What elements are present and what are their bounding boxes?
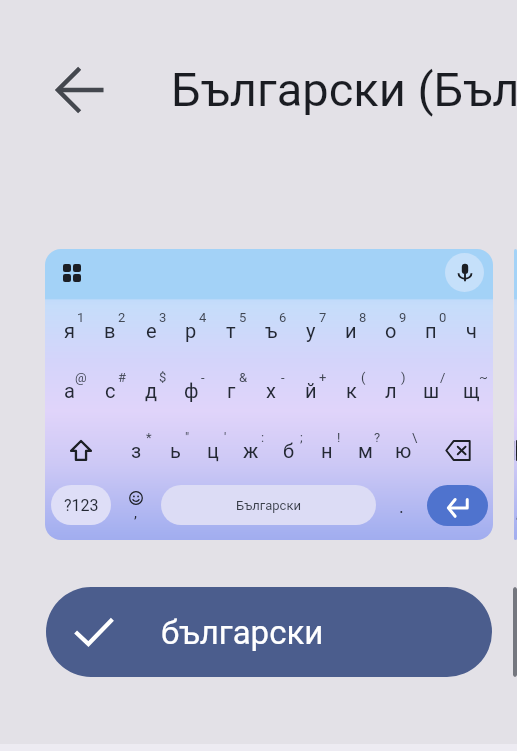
staticText: ?123 bbox=[64, 496, 99, 515]
staticText: ц bbox=[207, 439, 219, 462]
staticText: б bbox=[283, 439, 295, 462]
button[interactable]: ? bbox=[346, 420, 384, 480]
button[interactable]: Keyboard options bbox=[58, 259, 86, 287]
staticText: ~ bbox=[479, 370, 488, 385]
staticText: щ bbox=[463, 379, 480, 402]
staticText: 7 bbox=[319, 310, 327, 325]
staticText: 2 bbox=[118, 310, 126, 325]
staticText: * bbox=[146, 430, 152, 445]
button[interactable]: ( bbox=[331, 360, 371, 420]
staticText: Български (Български) bbox=[171, 62, 517, 117]
button[interactable]: 9 bbox=[371, 300, 411, 360]
button[interactable]: @ bbox=[48, 360, 89, 420]
button[interactable]: Enter bbox=[427, 485, 488, 526]
staticText: ; bbox=[300, 430, 303, 445]
staticText: я bbox=[64, 319, 75, 342]
button[interactable]: Shift bbox=[514, 420, 515, 480]
button[interactable]: * bbox=[117, 420, 156, 480]
button[interactable]: Keyboard options bbox=[514, 249, 517, 540]
button[interactable]: Keyboard options bbox=[45, 249, 493, 540]
button[interactable]: # bbox=[89, 360, 130, 420]
button[interactable]: ?123 bbox=[51, 485, 111, 525]
button[interactable]: ~ bbox=[451, 360, 491, 420]
staticText: @ bbox=[75, 370, 87, 385]
button[interactable]: Voice input bbox=[445, 253, 484, 292]
staticText: 8 bbox=[359, 310, 367, 325]
button[interactable]: * bbox=[515, 420, 516, 480]
staticText: ч bbox=[466, 319, 477, 342]
button[interactable]: 2 bbox=[89, 300, 130, 360]
staticText: \ bbox=[412, 430, 418, 445]
button[interactable]: - bbox=[251, 360, 291, 420]
staticText: български bbox=[161, 613, 324, 652]
button[interactable]: 4 bbox=[171, 300, 211, 360]
staticText: у bbox=[306, 319, 316, 342]
staticText: 9 bbox=[399, 310, 407, 325]
staticText: ж bbox=[243, 439, 259, 462]
button[interactable]: ) bbox=[371, 360, 411, 420]
staticText: и bbox=[345, 319, 357, 342]
staticText: : bbox=[261, 430, 265, 445]
staticText: " bbox=[185, 430, 190, 445]
staticText: ю bbox=[395, 439, 412, 462]
staticText: , bbox=[134, 504, 137, 522]
button[interactable]: Български bbox=[161, 485, 376, 525]
button[interactable]: Backspace bbox=[422, 420, 493, 480]
staticText: г bbox=[227, 379, 236, 402]
staticText: . bbox=[399, 496, 404, 517]
button[interactable]: 0 bbox=[411, 300, 451, 360]
staticText: - bbox=[201, 370, 205, 385]
button[interactable]: \ bbox=[384, 420, 422, 480]
button[interactable]: 8 bbox=[331, 300, 371, 360]
button[interactable]: ч bbox=[451, 300, 491, 360]
button[interactable]: . bbox=[376, 475, 427, 535]
staticText: р bbox=[185, 319, 197, 342]
button[interactable]: " bbox=[516, 420, 517, 480]
button[interactable]: ' bbox=[194, 420, 232, 480]
staticText: д bbox=[145, 379, 158, 402]
staticText: ъ bbox=[265, 319, 278, 342]
button[interactable]: 3 bbox=[130, 300, 171, 360]
staticText: $ bbox=[159, 370, 167, 385]
button[interactable]: Emoji bbox=[111, 475, 161, 535]
button[interactable]: & bbox=[211, 360, 251, 420]
staticText: 1 bbox=[77, 310, 85, 325]
staticText: / bbox=[440, 370, 446, 385]
staticText: 0 bbox=[439, 310, 447, 325]
staticText: ( bbox=[361, 370, 366, 385]
button[interactable]: 6 bbox=[251, 300, 291, 360]
staticText: а bbox=[64, 379, 75, 402]
staticText: 6 bbox=[279, 310, 287, 325]
staticText: л bbox=[385, 379, 397, 402]
staticText: ш bbox=[423, 379, 440, 402]
staticText: п bbox=[425, 319, 437, 342]
staticText: ' bbox=[224, 430, 227, 445]
button[interactable]: ; bbox=[270, 420, 308, 480]
staticText: з bbox=[515, 439, 516, 462]
staticText: ! bbox=[337, 430, 341, 445]
staticText: # bbox=[118, 370, 127, 385]
button[interactable] bbox=[513, 587, 517, 677]
staticText: ф bbox=[184, 379, 199, 402]
staticText: Български bbox=[236, 498, 301, 513]
staticText: е bbox=[146, 319, 157, 342]
button[interactable]: 1 bbox=[48, 300, 89, 360]
button[interactable]: български bbox=[46, 587, 492, 677]
staticText: т bbox=[226, 319, 236, 342]
staticText: 3 bbox=[159, 310, 167, 325]
button[interactable]: - bbox=[171, 360, 211, 420]
button[interactable]: Shift bbox=[45, 420, 117, 480]
button[interactable]: $ bbox=[130, 360, 171, 420]
button[interactable]: + bbox=[291, 360, 331, 420]
button[interactable]: Back bbox=[52, 62, 108, 118]
button[interactable]: 7 bbox=[291, 300, 331, 360]
button[interactable]: : bbox=[232, 420, 270, 480]
staticText: + bbox=[319, 370, 327, 385]
button[interactable]: / bbox=[411, 360, 451, 420]
staticText: ? bbox=[374, 430, 381, 445]
staticText: о bbox=[385, 319, 397, 342]
staticText: - bbox=[281, 370, 285, 385]
button[interactable]: 5 bbox=[211, 300, 251, 360]
button[interactable]: " bbox=[156, 420, 194, 480]
button[interactable]: ! bbox=[308, 420, 346, 480]
